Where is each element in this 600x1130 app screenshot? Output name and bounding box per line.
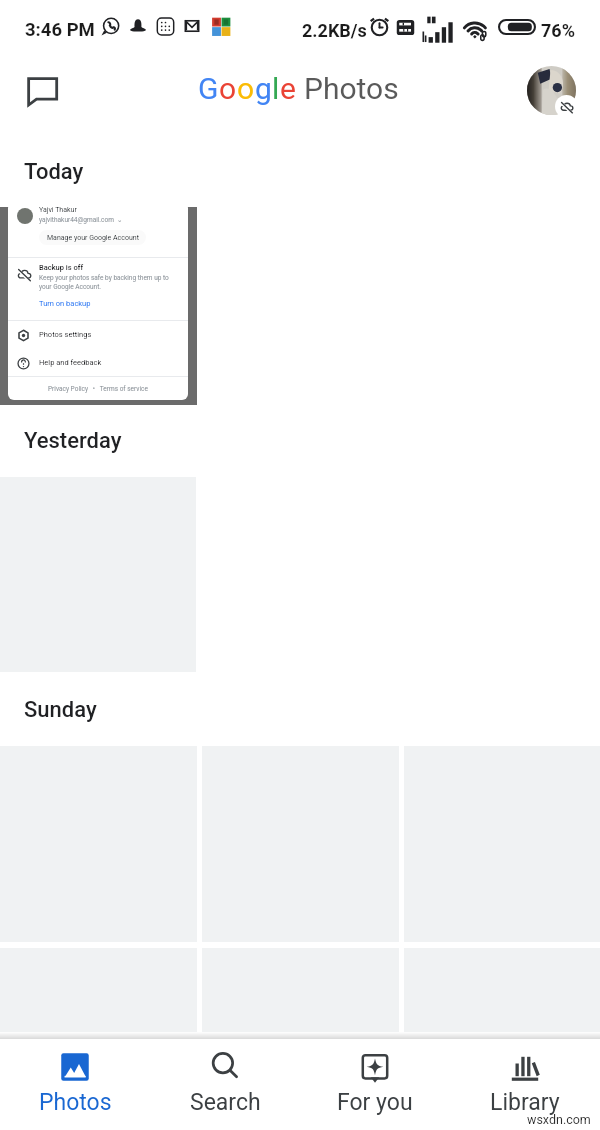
staticText: Yesterday bbox=[24, 428, 122, 454]
staticText: Photos settings bbox=[39, 330, 92, 339]
button[interactable]: For you bbox=[300, 1039, 450, 1130]
staticText: g bbox=[255, 71, 272, 106]
button[interactable]: Photos bbox=[0, 1039, 150, 1130]
staticText: Keep your photos safe by backing them up… bbox=[39, 274, 169, 291]
staticText: yajvithakur44@gmail.com ⌄ bbox=[39, 216, 123, 224]
staticText: Photos bbox=[304, 71, 399, 106]
staticText: Turn on backup bbox=[39, 299, 91, 308]
staticText: For you bbox=[337, 1089, 413, 1116]
staticText: Sunday bbox=[24, 697, 97, 723]
button[interactable]: Chat bbox=[18, 67, 66, 115]
staticText: e bbox=[280, 71, 296, 106]
button[interactable]: Search bbox=[150, 1039, 300, 1130]
staticText: Search bbox=[190, 1089, 261, 1116]
staticText: 2.2KB/s bbox=[302, 20, 367, 41]
staticText: G bbox=[198, 71, 219, 106]
staticText: Privacy Policy • Terms of service bbox=[48, 385, 148, 393]
staticText: o bbox=[237, 71, 255, 106]
button[interactable]: Manage your Google Account bbox=[39, 230, 146, 245]
button[interactable]: Turn on backup bbox=[39, 299, 91, 308]
staticText: wsxdn.com bbox=[527, 1112, 591, 1127]
staticText: Photos bbox=[39, 1089, 112, 1116]
staticText: Manage your Google Account bbox=[47, 234, 139, 242]
staticText: 76% bbox=[541, 20, 575, 41]
staticText: Backup is off bbox=[39, 263, 84, 272]
staticText: Today bbox=[24, 159, 84, 185]
staticText: Yajvi Thakur bbox=[39, 206, 77, 214]
staticText: 3:46 PM bbox=[25, 19, 95, 41]
staticText: o bbox=[219, 71, 237, 106]
button[interactable]: Account bbox=[527, 66, 577, 116]
button[interactable]: Library bbox=[450, 1039, 600, 1130]
staticText: Library bbox=[490, 1089, 560, 1116]
staticText: Help and feedback bbox=[39, 358, 102, 367]
staticText: l bbox=[272, 71, 280, 106]
